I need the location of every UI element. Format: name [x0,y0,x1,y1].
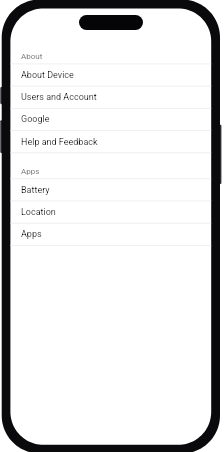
staticText: About Device [21,70,74,81]
staticText: About [21,52,43,61]
staticText: Google [21,114,50,125]
button[interactable]: Users and Account [10,86,211,108]
staticText: Apps [21,229,42,240]
button[interactable]: Battery [10,179,211,201]
staticText: Apps [21,167,40,176]
staticText: Battery [21,185,50,196]
staticText: Help and Feedback [21,137,98,148]
staticText: Location [21,207,56,218]
button[interactable]: Help and Feedback [10,131,211,153]
button[interactable]: Location [10,201,211,223]
button[interactable]: Apps [10,223,211,245]
button[interactable]: Google [10,108,211,130]
staticText: Users and Account [21,92,97,103]
button[interactable]: About Device [10,64,211,86]
